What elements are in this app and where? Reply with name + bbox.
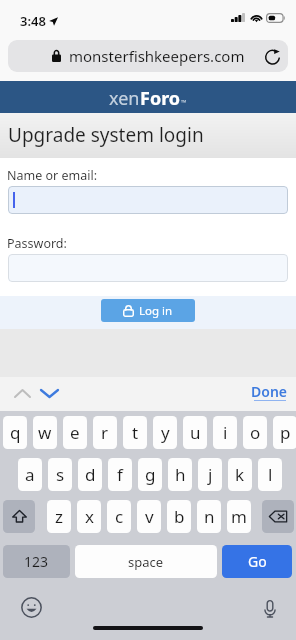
button[interactable]: Backspace — [262, 500, 294, 533]
button[interactable]: j — [198, 458, 222, 491]
button[interactable]: Log in — [101, 299, 195, 322]
button[interactable]: z — [47, 500, 71, 533]
staticText: Foro — [140, 86, 181, 111]
staticText: u — [190, 421, 201, 444]
button[interactable]: u — [183, 416, 207, 449]
staticText: space — [128, 553, 164, 571]
button[interactable]: s — [48, 458, 72, 491]
button[interactable]: m — [227, 500, 251, 533]
button[interactable]: Shift — [3, 500, 35, 533]
button[interactable]: d — [78, 458, 102, 491]
button[interactable]: Done — [248, 380, 290, 406]
button[interactable]: a — [18, 458, 42, 491]
button[interactable]: f — [108, 458, 132, 491]
staticText: 123 — [24, 552, 49, 571]
button[interactable]: Emoji keyboard — [21, 597, 42, 618]
staticText: Go — [248, 552, 267, 571]
staticText: o — [250, 421, 261, 444]
staticText: y — [161, 421, 170, 444]
button[interactable]: l — [258, 458, 282, 491]
button[interactable]: k — [228, 458, 252, 491]
staticText: 3:48 — [20, 12, 46, 30]
button[interactable]: y — [153, 416, 177, 449]
button[interactable]: c — [107, 500, 131, 533]
button[interactable]: x — [77, 500, 101, 533]
button[interactable]: Next field — [35, 380, 63, 406]
button[interactable] — [8, 186, 288, 214]
staticText: Upgrade system login — [8, 122, 204, 148]
button[interactable]: w — [33, 416, 57, 449]
staticText: w — [38, 421, 52, 444]
staticText: g — [145, 463, 156, 486]
staticText: v — [145, 505, 154, 528]
button[interactable]: g — [138, 458, 162, 491]
staticText: xen — [109, 86, 140, 111]
button[interactable]: Previous field — [8, 380, 36, 406]
staticText: h — [175, 463, 186, 486]
staticText: x — [85, 505, 94, 528]
staticText: monsterfishkeepers.com — [69, 46, 245, 66]
button[interactable]: h — [168, 458, 192, 491]
staticText: q — [10, 421, 21, 444]
button[interactable]: o — [243, 416, 267, 449]
button[interactable]: i — [213, 416, 237, 449]
button[interactable]: Go — [222, 545, 292, 578]
staticText: a — [25, 463, 35, 486]
staticText: s — [56, 463, 65, 486]
button[interactable]: Reload page — [264, 48, 281, 65]
staticText: i — [223, 421, 228, 444]
button[interactable]: n — [197, 500, 221, 533]
button[interactable]: space — [75, 545, 217, 578]
staticText: z — [55, 505, 63, 528]
staticText: t — [132, 421, 139, 444]
button[interactable]: r — [93, 416, 117, 449]
button[interactable]: b — [167, 500, 191, 533]
staticText: c — [115, 505, 124, 528]
staticText: ™ — [181, 98, 187, 108]
button[interactable]: v — [137, 500, 161, 533]
staticText: l — [268, 463, 273, 486]
staticText: e — [70, 421, 80, 444]
button[interactable]: monsterfishkeepers.com — [8, 40, 288, 72]
button[interactable]: e — [63, 416, 87, 449]
staticText: Name or email: — [7, 167, 98, 184]
button[interactable] — [8, 254, 288, 282]
staticText: j — [208, 463, 213, 486]
button[interactable]: Dictation — [263, 599, 277, 619]
staticText: n — [204, 505, 215, 528]
staticText: Log in — [139, 303, 173, 319]
staticText: b — [174, 505, 185, 528]
staticText: m — [231, 505, 247, 528]
staticText: Done — [251, 382, 288, 401]
button[interactable]: q — [3, 416, 27, 449]
staticText: k — [235, 463, 245, 486]
button[interactable]: 123 — [3, 545, 70, 578]
staticText: f — [117, 463, 123, 486]
staticText: Password: — [7, 235, 67, 252]
staticText: p — [280, 421, 291, 444]
staticText: r — [101, 421, 109, 444]
button[interactable]: p — [273, 416, 296, 449]
button[interactable]: t — [123, 416, 147, 449]
staticText: d — [85, 463, 96, 486]
